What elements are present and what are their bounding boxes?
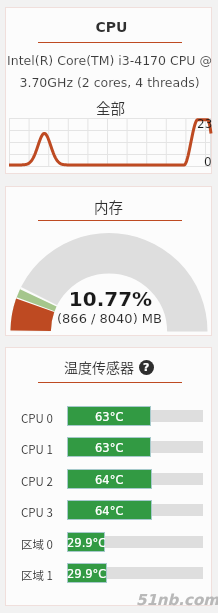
button[interactable]: Help about temperature sensors [139,360,154,375]
staticText: (866 / 8040) MB [7,311,212,326]
staticText: 温度传感器 [64,357,134,377]
staticText: 23 [197,117,213,131]
staticText: CPU [9,19,214,35]
staticText: 29.9°C [67,536,105,549]
button[interactable]: 区域 0 [6,531,211,553]
staticText: ? [143,361,150,374]
staticText: 64°C [95,504,124,517]
staticText: 区域 1 [21,567,53,584]
button[interactable]: CPU 3 [6,499,211,521]
staticText: 3.70GHz (2 cores, 4 threads) [7,75,212,90]
staticText: 64°C [95,473,124,486]
staticText: 51nb.com [136,591,218,608]
staticText: CPU 0 [21,410,53,427]
staticText: 29.9°C [67,567,107,580]
staticText: 10.77% [8,287,213,310]
staticText: 0 [204,155,212,169]
staticText: 63°C [95,410,124,423]
button[interactable]: CPU 2 [6,468,211,490]
staticText: 63°C [95,441,124,454]
button[interactable]: CPU 1 [6,436,211,458]
staticText: CPU 3 [21,504,53,521]
staticText: CPU 1 [21,441,53,458]
staticText: 内存 [6,196,211,217]
staticText: 全部 [8,97,213,118]
staticText: Intel(R) Core(TM) i3-4170 CPU @ [7,53,212,68]
staticText: CPU 2 [21,473,53,490]
button[interactable]: 区域 1 [6,562,211,584]
staticText: 区域 0 [21,536,53,553]
button[interactable]: CPU 0 [6,405,211,427]
